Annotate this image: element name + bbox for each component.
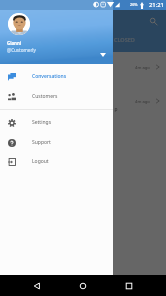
staticText: Customers [32,93,58,100]
staticText: Support [32,139,51,146]
button[interactable]: Home [75,278,91,294]
staticText: OPEN [34,36,49,43]
staticText: Giulia Bianchi [33,95,72,103]
button[interactable]: Recents [121,278,137,294]
staticText: CLOSED [114,36,135,43]
staticText: Ciao, ho un pro [33,72,68,79]
button[interactable]: Conversations [0,67,113,86]
staticText: Conversations [12,17,67,28]
staticText: 4m ago [135,99,150,105]
button[interactable]: Search [147,15,160,28]
button[interactable]: Switch account [97,49,109,61]
button[interactable]: Support [0,133,113,152]
staticText: 21:21 [149,1,164,9]
staticText: Marco Rossi [33,61,67,69]
button[interactable]: Settings [0,113,113,132]
staticText: Settings [32,119,52,126]
staticText: 26% [130,2,138,7]
button[interactable]: Logout [0,152,113,171]
staticText: @Customerly [7,47,36,53]
staticText: Logout [32,158,49,165]
button[interactable]: Back [29,278,45,294]
staticText: Conversations [32,73,67,80]
button[interactable]: CLOSED [83,33,166,46]
button[interactable]: Giulia Bianchi [0,87,166,121]
button[interactable]: OPEN [0,33,83,46]
staticText: 4m ago [135,65,150,71]
staticText: Grazie mille, ho risolto, si e risolve i… [33,106,118,113]
staticText: Gianni [7,40,22,46]
button[interactable]: Customers [0,87,113,106]
button[interactable]: Marco Rossi [0,53,166,87]
